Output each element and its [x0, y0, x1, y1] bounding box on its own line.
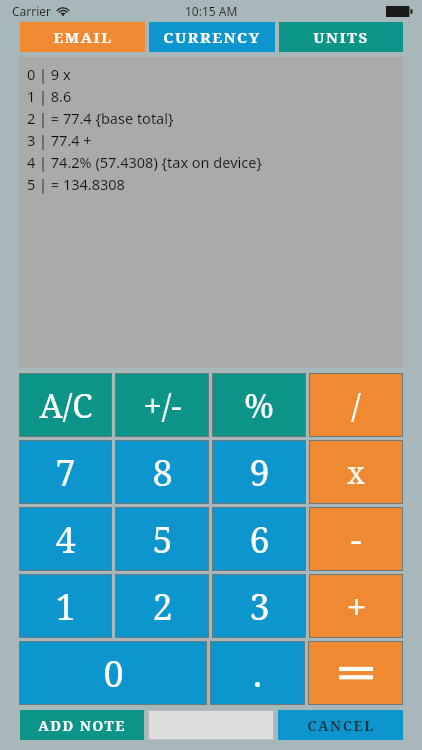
- button[interactable]: Decimal point: [210, 641, 305, 705]
- button[interactable]: 8: [115, 440, 209, 504]
- staticText: -: [350, 515, 362, 564]
- button[interactable]: Multiply: [309, 440, 403, 504]
- staticText: ADD NOTE: [38, 716, 126, 735]
- staticText: 6: [249, 515, 270, 564]
- button[interactable]: 0 | 9 x: [19, 57, 403, 368]
- staticText: x: [347, 452, 365, 493]
- button[interactable]: 2: [115, 574, 209, 638]
- staticText: 1 | 8.6: [27, 86, 72, 106]
- staticText: UNITS: [313, 27, 369, 47]
- button[interactable]: 4: [19, 507, 112, 571]
- staticText: 4: [55, 515, 76, 564]
- staticText: 3: [249, 582, 270, 631]
- staticText: 9: [249, 448, 270, 497]
- button[interactable]: Divide: [309, 373, 403, 437]
- staticText: %: [244, 383, 274, 428]
- staticText: 2 | = 77.4 {base total}: [27, 108, 174, 128]
- staticText: 0: [103, 649, 124, 698]
- button[interactable]: 1: [19, 574, 112, 638]
- staticText: 1: [55, 582, 76, 631]
- staticText: +/-: [143, 383, 182, 428]
- button[interactable]: 0: [19, 641, 207, 705]
- staticText: +: [346, 582, 367, 631]
- staticText: 3 | 77.4 +: [27, 130, 92, 150]
- staticText: 5: [152, 515, 173, 564]
- staticText: A/C: [39, 383, 93, 428]
- button[interactable]: +/-: [115, 373, 209, 437]
- staticText: 5 | = 134.8308: [27, 174, 125, 194]
- button[interactable]: ADD NOTE: [20, 710, 144, 740]
- staticText: 7: [55, 448, 76, 497]
- staticText: CANCEL: [307, 716, 375, 735]
- button[interactable]: 3: [212, 574, 306, 638]
- staticText: 4 | 74.2% (57.4308) {tax on device}: [27, 152, 262, 172]
- staticText: EMAIL: [53, 27, 113, 47]
- button[interactable]: UNITS: [279, 22, 403, 52]
- button[interactable]: 7: [19, 440, 112, 504]
- button[interactable]: A/C: [19, 373, 112, 437]
- button[interactable]: %: [212, 373, 306, 437]
- button[interactable]: Equals: [308, 641, 403, 705]
- staticText: .: [253, 649, 262, 698]
- staticText: 8: [152, 448, 173, 497]
- button[interactable]: 9: [212, 440, 306, 504]
- staticText: 0 | 9 x: [27, 64, 71, 84]
- button[interactable]: Note text field: [148, 710, 274, 740]
- button[interactable]: 6: [212, 507, 306, 571]
- staticText: 10:15 AM: [185, 3, 238, 19]
- staticText: 2: [152, 582, 173, 631]
- button[interactable]: EMAIL: [20, 22, 145, 52]
- staticText: /: [351, 383, 361, 428]
- staticText: Carrier: [12, 3, 52, 19]
- button[interactable]: Plus: [309, 574, 403, 638]
- button[interactable]: 5: [115, 507, 209, 571]
- button[interactable]: CURRENCY: [149, 22, 275, 52]
- button[interactable]: CANCEL: [278, 710, 403, 740]
- button[interactable]: Minus: [309, 507, 403, 571]
- staticText: CURRENCY: [163, 27, 261, 47]
